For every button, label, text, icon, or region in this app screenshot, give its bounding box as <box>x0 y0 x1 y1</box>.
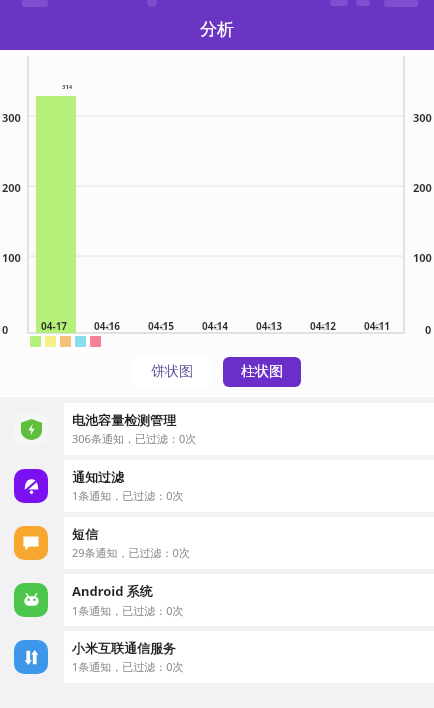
staticText: 04-15 <box>148 319 175 333</box>
staticText: 300 <box>413 110 432 125</box>
staticText: 04-13 <box>256 319 283 333</box>
button[interactable]: 通知过滤 <box>0 460 434 512</box>
button[interactable]: 电池容量检测管理 <box>0 403 434 455</box>
staticText: 短信 <box>72 526 98 542</box>
staticText: 1条通知，已过滤：0次 <box>72 659 184 674</box>
staticText: 饼状图 <box>151 363 193 381</box>
staticText: 小米互联通信服务 <box>72 640 176 656</box>
staticText: 100 <box>413 250 432 265</box>
staticText: 04-17 <box>41 319 68 333</box>
staticText: 306条通知，已过滤：0次 <box>72 431 197 446</box>
staticText: 通知过滤 <box>72 469 124 485</box>
button[interactable]: 小米互联通信服务 <box>0 631 434 683</box>
other: 短信 <box>14 526 48 560</box>
staticText: 100 <box>2 250 21 265</box>
button[interactable]: 饼状图 <box>133 357 211 387</box>
other: 小米互联通信服务 <box>14 640 48 674</box>
button[interactable]: 短信 <box>0 517 434 569</box>
staticText: 1条通知，已过滤：0次 <box>72 603 184 618</box>
other: 电池容量检测管理 <box>14 412 48 446</box>
staticText: 0 <box>425 322 432 337</box>
staticText: 200 <box>413 180 432 195</box>
staticText: 200 <box>2 180 21 195</box>
staticText: 04-16 <box>94 319 121 333</box>
staticText: 314 <box>62 83 73 91</box>
staticText: 分析 <box>200 19 234 40</box>
staticText: 0 <box>2 322 9 337</box>
staticText: 柱状图 <box>241 363 283 381</box>
other: Android 系统 <box>14 583 48 617</box>
staticText: 04-11 <box>364 319 391 333</box>
staticText: 29条通知，已过滤：0次 <box>72 545 190 560</box>
staticText: 电池容量检测管理 <box>72 412 176 428</box>
button[interactable]: Android 系统 <box>0 574 434 626</box>
staticText: 04-12 <box>310 319 337 333</box>
button[interactable]: 柱状图 <box>223 357 301 387</box>
staticText: Android 系统 <box>72 582 153 600</box>
other: 通知过滤 <box>14 469 48 503</box>
staticText: 300 <box>2 110 21 125</box>
staticText: 1条通知，已过滤：0次 <box>72 488 184 503</box>
staticText: 04-14 <box>202 319 229 333</box>
